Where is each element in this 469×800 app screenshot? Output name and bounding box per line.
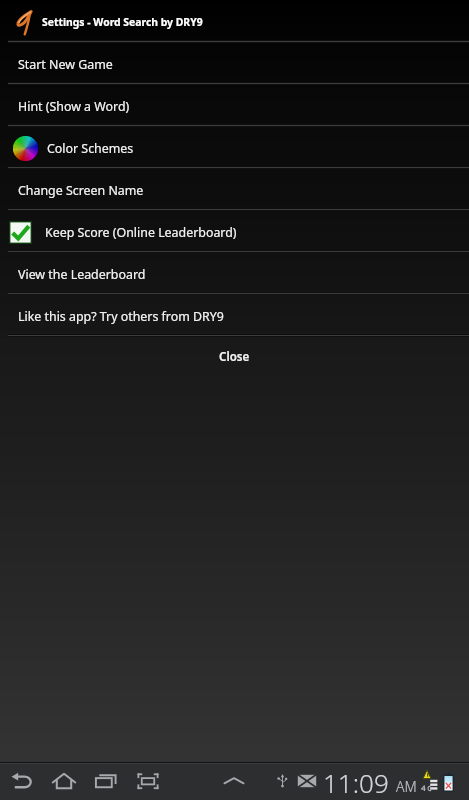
button[interactable]: Change Screen Name: [0, 169, 469, 211]
button[interactable]: Color Schemes: [0, 127, 469, 169]
staticText: Change Screen Name: [18, 182, 144, 199]
staticText: Keep Score (Online Leaderboard): [45, 224, 237, 241]
button[interactable]: Start New Game: [0, 43, 469, 85]
button[interactable]: Home: [52, 769, 76, 793]
button[interactable]: Status: [0, 762, 469, 800]
staticText: Color Schemes: [47, 140, 134, 157]
staticText: 11:09: [323, 765, 389, 800]
staticText: View the Leaderboard: [18, 266, 146, 283]
staticText: Like this app? Try others from DRY9: [18, 308, 224, 325]
button[interactable]: Keep Score (Online Leaderboard): [0, 211, 469, 253]
button[interactable]: Recent apps: [94, 769, 118, 793]
staticText: Close: [219, 349, 250, 365]
button[interactable]: Hint (Show a Word): [0, 85, 469, 127]
button[interactable]: Show notifications: [222, 769, 246, 793]
staticText: AM: [396, 777, 417, 796]
staticText: Settings - Word Search by DRY9: [42, 15, 203, 29]
button[interactable]: Back: [10, 769, 34, 793]
button[interactable]: Like this app? Try others from DRY9: [0, 295, 469, 337]
button[interactable]: View the Leaderboard: [0, 253, 469, 295]
button[interactable]: Close: [0, 337, 469, 377]
button[interactable]: Screenshot: [136, 769, 160, 793]
staticText: Hint (Show a Word): [18, 98, 130, 115]
staticText: Start New Game: [18, 56, 113, 73]
